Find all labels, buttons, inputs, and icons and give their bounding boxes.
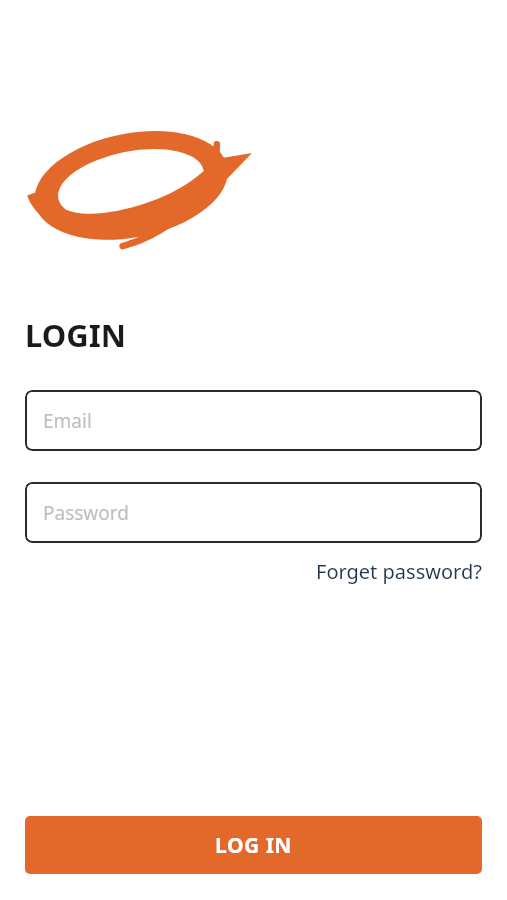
button[interactable]: Password (25, 482, 482, 543)
button[interactable]: Forget password? (316, 556, 482, 587)
button[interactable]: LOG IN (25, 816, 482, 874)
other: Company logo (25, 124, 252, 244)
staticText: Password (43, 500, 129, 526)
staticText: LOG IN (215, 831, 292, 860)
staticText: Email (43, 408, 92, 434)
button[interactable]: Email (25, 390, 482, 451)
staticText: Forget password? (316, 558, 482, 585)
staticText: LOGIN (25, 314, 126, 356)
